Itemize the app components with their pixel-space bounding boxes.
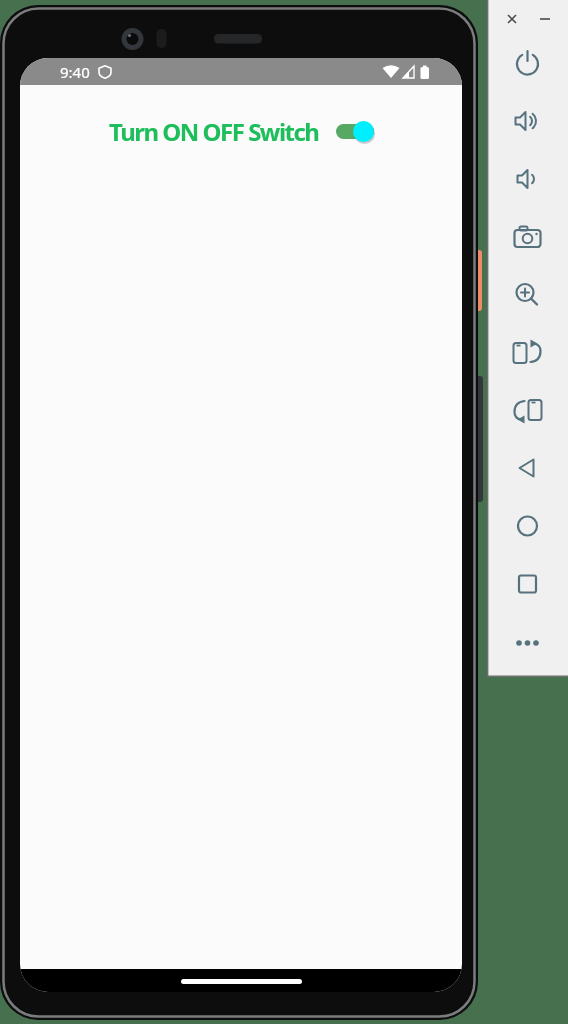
staticText: Turn ON OFF Switch: [109, 115, 319, 148]
button[interactable]: [487, 380, 568, 437]
button[interactable]: [487, 209, 568, 266]
button[interactable]: [487, 0, 568, 38]
button[interactable]: [487, 323, 568, 380]
button[interactable]: [487, 266, 568, 323]
button[interactable]: [487, 95, 568, 152]
button[interactable]: [487, 437, 568, 494]
button[interactable]: [487, 152, 568, 209]
button[interactable]: [487, 38, 568, 95]
staticText: 9:40: [60, 62, 90, 82]
button[interactable]: [487, 608, 568, 665]
button[interactable]: [487, 494, 568, 551]
button[interactable]: [487, 551, 568, 608]
button[interactable]: [336, 121, 374, 142]
